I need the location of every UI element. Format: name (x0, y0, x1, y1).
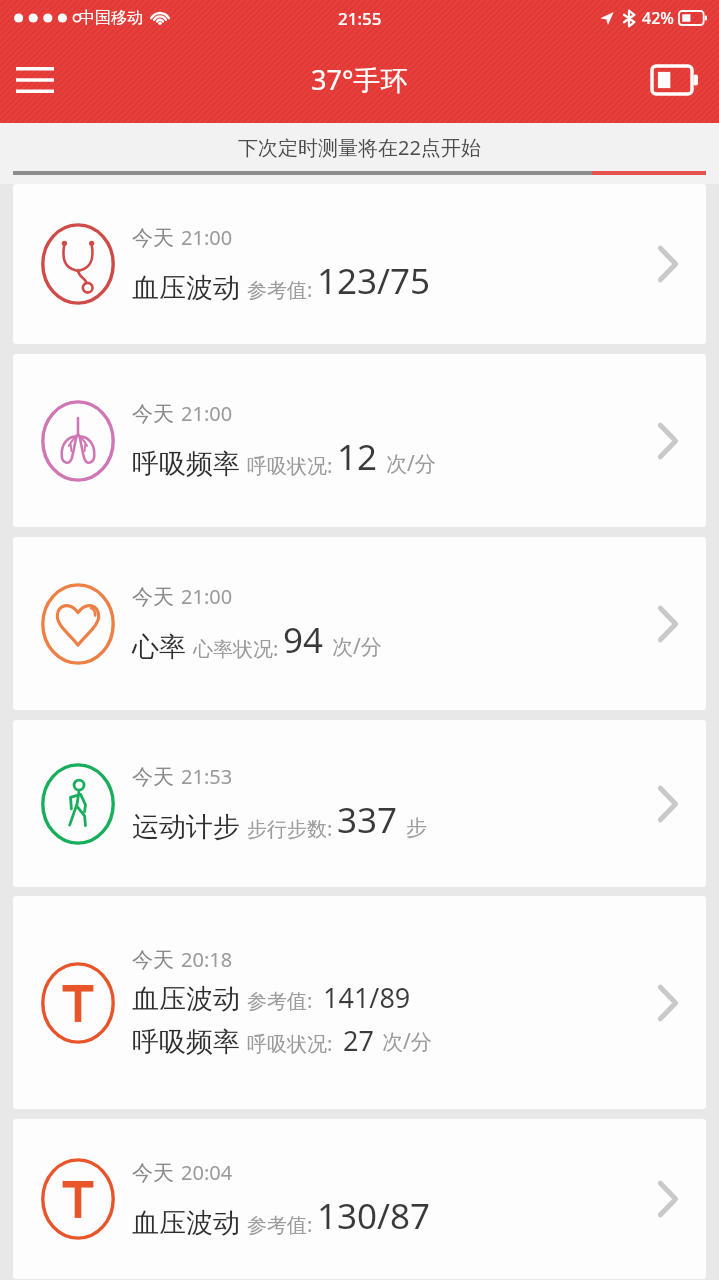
button[interactable]: 今天 (13, 537, 706, 710)
staticText: 123/75 (317, 257, 431, 305)
staticText: 37°手环 (311, 61, 408, 98)
staticText: 20:04 (181, 1159, 233, 1186)
staticText: 21:00 (181, 224, 233, 251)
staticText: 血压波动 (132, 1206, 240, 1240)
staticText: 今天 (132, 947, 174, 973)
other: Open detail (640, 236, 696, 292)
staticText: 步 (406, 815, 427, 841)
staticText: 94 (283, 616, 324, 664)
button[interactable]: 今天 (13, 720, 706, 887)
button[interactable]: Battery status (643, 48, 707, 112)
staticText: 参考值: (247, 987, 313, 1014)
staticText: 运动计步 (132, 810, 240, 844)
staticText: 下次定时测量将在22点开始 (238, 134, 481, 161)
staticText: 呼吸状况: (247, 1030, 333, 1057)
other: Open detail (640, 776, 696, 832)
staticText: 参考值: (247, 276, 313, 303)
staticText: 步行步数: (247, 815, 333, 842)
staticText: 参考值: (247, 1211, 313, 1238)
staticText: 141/89 (323, 979, 411, 1016)
staticText: 血压波动 (132, 982, 240, 1016)
button[interactable]: 今天 (13, 184, 706, 344)
staticText: 130/87 (317, 1192, 431, 1240)
staticText: 呼吸状况: (247, 452, 333, 479)
other: Open detail (640, 1171, 696, 1227)
staticText: 中国移动 (79, 8, 143, 28)
button[interactable]: 今天 (13, 896, 706, 1109)
button[interactable]: Menu (6, 51, 64, 109)
staticText: 337 (337, 796, 398, 844)
staticText: 21:55 (338, 7, 382, 30)
staticText: 次/分 (386, 449, 436, 478)
staticText: 今天 (132, 584, 174, 610)
staticText: 20:18 (181, 946, 233, 973)
staticText: 次/分 (332, 632, 382, 661)
staticText: 血压波动 (132, 271, 240, 305)
staticText: 今天 (132, 225, 174, 251)
staticText: 21:00 (181, 400, 233, 427)
staticText: 呼吸频率 (132, 1025, 240, 1059)
other: Open detail (640, 975, 696, 1031)
staticText: 心率状况: (193, 635, 279, 662)
staticText: 12 (337, 433, 378, 481)
staticText: 次/分 (382, 1027, 432, 1056)
button[interactable]: 今天 (13, 1119, 706, 1279)
staticText: 呼吸频率 (132, 447, 240, 481)
staticText: 42% (642, 7, 674, 29)
staticText: 21:00 (181, 583, 233, 610)
staticText: 心率 (132, 630, 186, 664)
staticText: 27 (343, 1022, 374, 1059)
staticText: 今天 (132, 1160, 174, 1186)
other: Open detail (640, 596, 696, 652)
staticText: 今天 (132, 401, 174, 427)
button[interactable]: 今天 (13, 354, 706, 527)
staticText: 今天 (132, 764, 174, 790)
other: Open detail (640, 413, 696, 469)
staticText: 21:53 (181, 763, 233, 790)
